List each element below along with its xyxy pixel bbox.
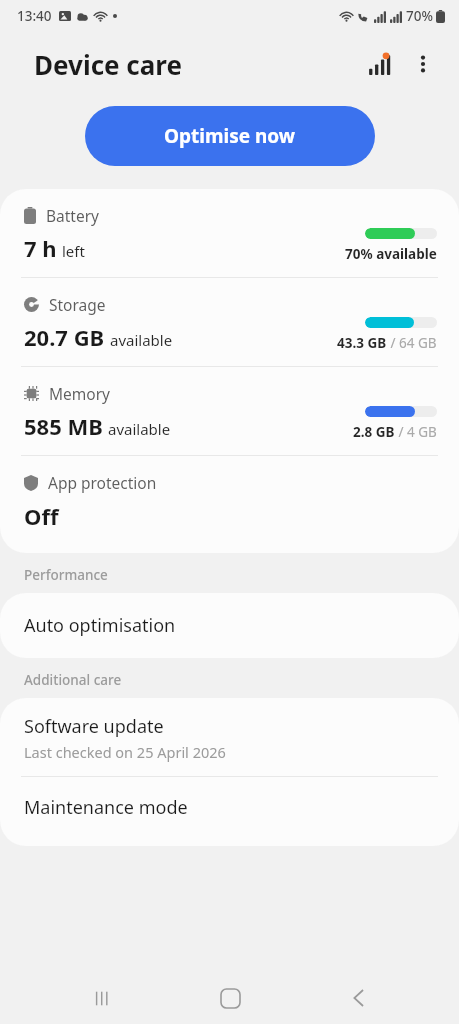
staticText: Software update <box>24 714 164 739</box>
button[interactable]: Battery <box>0 189 459 277</box>
staticText: / 4 GB <box>395 423 437 441</box>
staticText: available <box>108 419 171 439</box>
staticText: Battery <box>46 205 100 226</box>
button[interactable]: Software update <box>0 698 459 776</box>
staticText: 13:40 <box>17 7 52 25</box>
button[interactable]: Optimise now <box>85 106 375 166</box>
staticText: 43.3 GB <box>337 334 387 352</box>
staticText: Off <box>24 501 59 531</box>
staticText: left <box>62 241 85 261</box>
staticText: Memory <box>49 383 110 404</box>
staticText: 585 MB <box>24 411 103 441</box>
staticText: App protection <box>48 472 157 493</box>
staticText: Maintenance mode <box>24 795 188 820</box>
staticText: Additional care <box>24 671 122 689</box>
button[interactable]: App protection <box>0 456 459 553</box>
staticText: Auto optimisation <box>24 613 176 638</box>
staticText: 2.8 GB <box>353 423 395 441</box>
staticText: available <box>110 330 173 350</box>
staticText: Device care <box>34 47 182 82</box>
button[interactable]: Maintenance mode <box>0 777 459 846</box>
staticText: Storage <box>49 294 106 315</box>
button[interactable]: Memory <box>0 367 459 455</box>
staticText: / 64 GB <box>387 334 437 352</box>
staticText: 20.7 GB <box>24 322 105 352</box>
staticText: 70% available <box>345 245 437 263</box>
staticText: Optimise now <box>164 123 296 149</box>
staticText: Performance <box>24 566 108 584</box>
button[interactable]: Usage statistics <box>357 42 401 86</box>
button[interactable]: Storage <box>0 278 459 366</box>
button[interactable]: More options <box>401 42 445 86</box>
staticText: 7 h <box>24 233 57 263</box>
button[interactable]: Back <box>330 972 386 1024</box>
button[interactable]: Recent apps <box>73 972 129 1024</box>
staticText: Last checked on 25 April 2026 <box>24 742 226 762</box>
button[interactable]: Auto optimisation <box>0 593 459 658</box>
staticText: 70% <box>406 7 433 25</box>
button[interactable]: Home <box>202 972 258 1024</box>
